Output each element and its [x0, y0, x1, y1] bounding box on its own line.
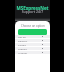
- staticText: Parcels: [18, 43, 26, 46]
- button[interactable]: Delivery: [15, 39, 50, 42]
- button[interactable]: Account: [15, 51, 50, 54]
- staticText: Top up: [18, 35, 26, 38]
- staticText: Delivery: [18, 39, 28, 42]
- staticText: Support: [18, 47, 28, 50]
- staticText: Choose an option: [21, 24, 45, 28]
- staticText: Account: [18, 51, 28, 54]
- button[interactable]: [18, 29, 47, 35]
- staticText: MSExpressNet: [15, 5, 50, 11]
- button[interactable]: Top up: [15, 35, 50, 38]
- button[interactable]: Support: [15, 47, 50, 50]
- staticText: Support 24/7: [15, 9, 50, 14]
- button[interactable]: Parcels: [15, 43, 50, 46]
